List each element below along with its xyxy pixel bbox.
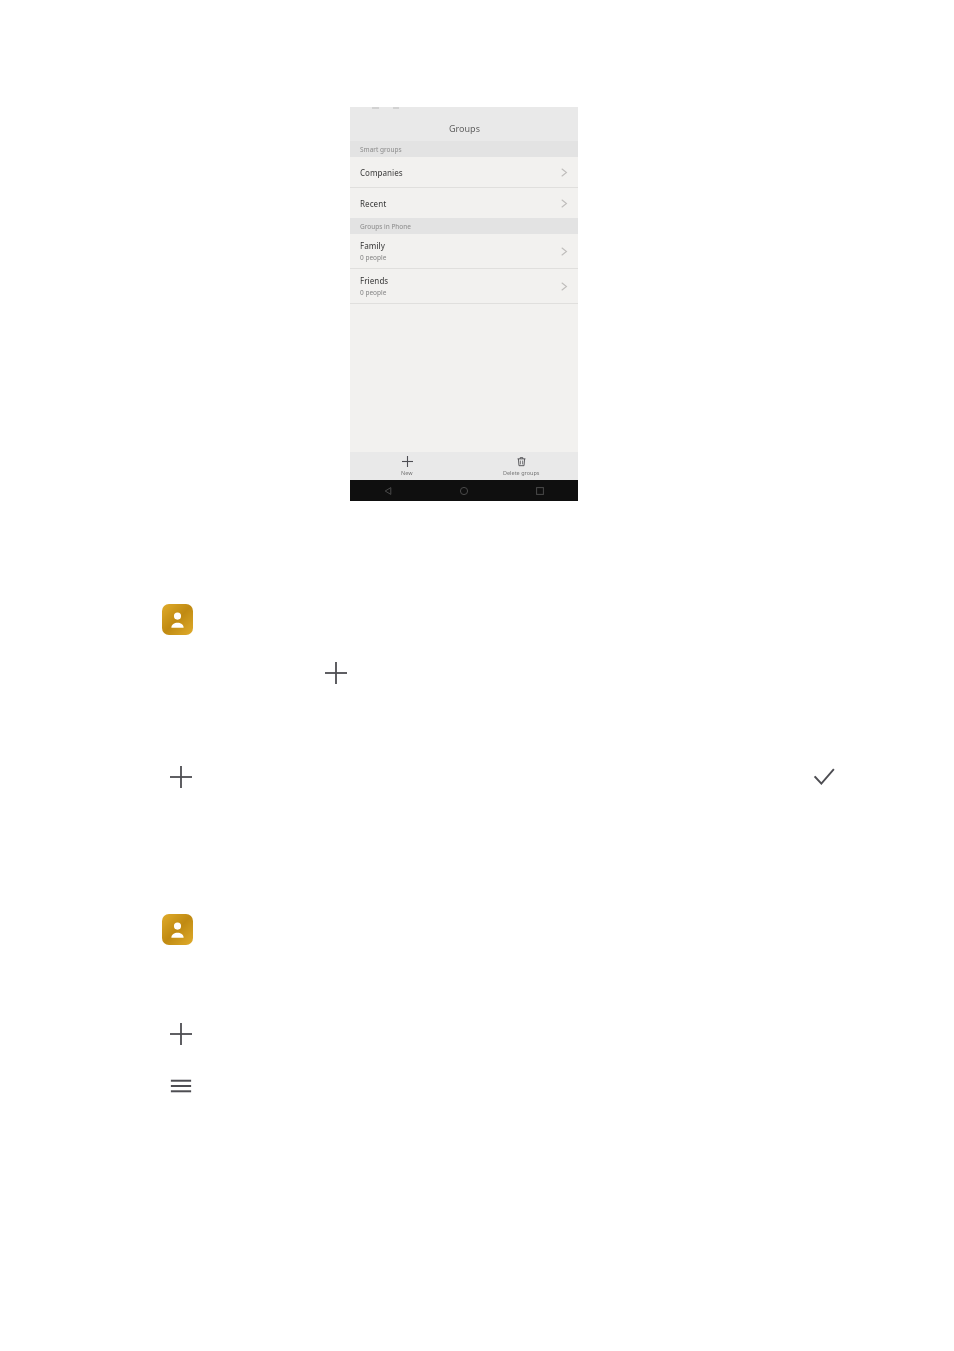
button[interactable]: Contacts <box>162 604 193 635</box>
button[interactable]: Confirm <box>810 763 838 791</box>
staticText: Smart groups <box>360 145 402 154</box>
staticText: Recent <box>360 198 387 209</box>
button[interactable]: Companies <box>350 157 578 187</box>
button[interactable]: Add <box>167 763 195 791</box>
button[interactable]: Family <box>350 234 578 268</box>
staticText: 0 people <box>360 253 387 262</box>
button[interactable]: New <box>350 452 464 480</box>
staticText: Groups <box>449 122 480 134</box>
staticText: Delete groups <box>503 469 540 476</box>
staticText: 0 people <box>360 288 387 297</box>
staticText: New <box>401 469 413 476</box>
button[interactable]: Menu <box>167 1072 195 1100</box>
staticText: Family <box>360 240 385 251</box>
button[interactable]: Add <box>322 659 350 687</box>
button[interactable]: Friends <box>350 269 578 303</box>
staticText: Friends <box>360 275 389 286</box>
staticText: Groups in Phone <box>360 222 411 231</box>
button[interactable]: Delete groups <box>464 452 578 480</box>
button[interactable]: Add <box>167 1020 195 1048</box>
button[interactable]: Recent <box>350 188 578 218</box>
staticText: Companies <box>360 167 403 178</box>
button[interactable]: Contacts <box>162 914 193 945</box>
